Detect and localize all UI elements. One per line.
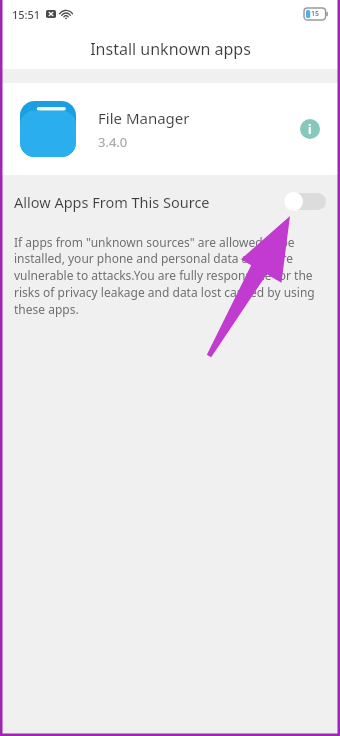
button[interactable]: Allow apps from this source toggle [284,192,326,211]
button[interactable]: Allow Apps From This Source [0,175,340,228]
staticText: 15:51 [12,7,41,22]
staticText: If apps from "unknown sources" are allow… [14,234,322,318]
staticText: Install unknown apps [90,38,251,60]
staticText: i [308,121,312,137]
button[interactable]: File Manager [0,83,340,175]
staticText: Allow Apps From This Source [14,192,284,212]
staticText: 15 [311,9,320,19]
staticText: File Manager [98,108,190,128]
staticText: 3.4.0 [98,133,128,151]
button[interactable]: App info [300,119,320,139]
